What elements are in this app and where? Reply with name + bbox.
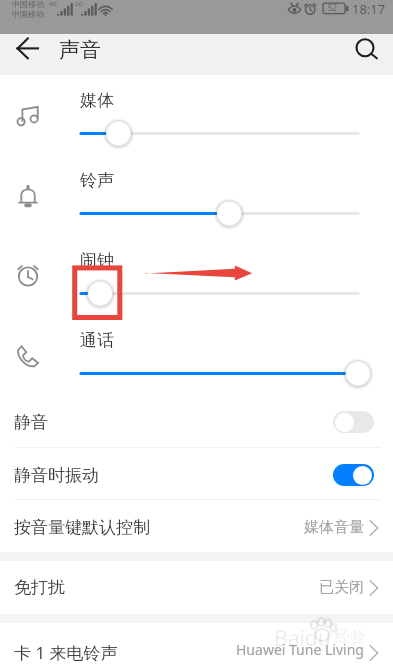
staticText: 铃声 <box>80 170 114 191</box>
staticText: Baidu <box>274 624 331 653</box>
button[interactable]: 媒体 <box>0 77 393 157</box>
staticText: 52 <box>328 2 338 13</box>
staticText: 中国移动 <box>12 9 44 19</box>
staticText: 静音 <box>14 412 48 433</box>
staticText: 通话 <box>80 330 114 351</box>
button[interactable]: Search <box>348 34 393 75</box>
staticText: 静音时振动 <box>14 465 99 486</box>
button[interactable]: 静音 <box>0 396 393 448</box>
staticText: 按音量键默认控制 <box>14 517 150 538</box>
staticText: 经验 <box>334 627 366 647</box>
staticText: 2G <box>75 0 83 8</box>
staticText: 已关闭 <box>319 578 364 597</box>
button[interactable]: 通话 <box>0 317 393 397</box>
button[interactable]: 闹钟 <box>0 237 393 317</box>
staticText: Huawei Tune Living <box>236 640 364 659</box>
staticText: 4G <box>49 0 57 8</box>
staticText: 卡 1 来电铃声 <box>14 641 118 664</box>
button[interactable]: Back <box>5 34 50 75</box>
button[interactable]: 卡 1 来电铃声 <box>0 626 393 671</box>
staticText: 免打扰 <box>14 577 65 598</box>
button[interactable]: 按音量键默认控制 <box>0 501 393 553</box>
button[interactable]: 免打扰 <box>0 561 393 613</box>
staticText: 18:17 <box>352 0 386 18</box>
staticText: 中国移动 <box>12 0 44 9</box>
button[interactable]: 铃声 <box>0 157 393 237</box>
staticText: 媒体音量 <box>304 518 364 537</box>
staticText: 闹钟 <box>80 250 114 271</box>
staticText: 媒体 <box>80 90 114 111</box>
button[interactable]: 静音时振动 <box>0 449 393 501</box>
staticText: 声音 <box>59 37 101 63</box>
